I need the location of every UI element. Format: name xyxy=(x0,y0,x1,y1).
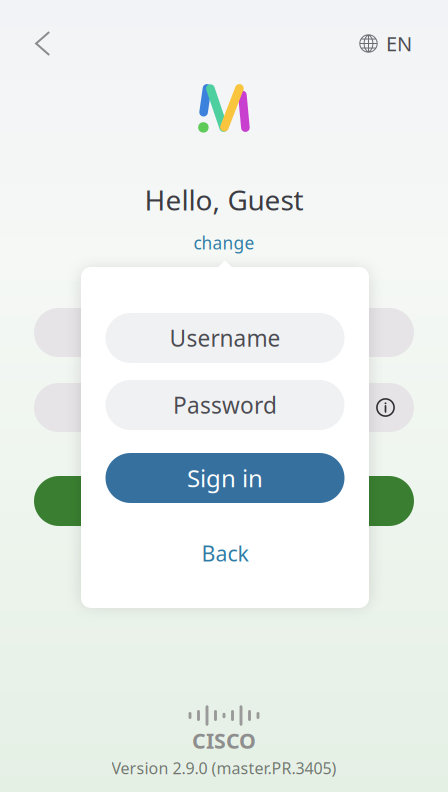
staticText: EN xyxy=(386,30,412,57)
button[interactable]: Language EN xyxy=(359,16,448,71)
staticText: change xyxy=(193,231,254,254)
button[interactable]: change xyxy=(193,231,254,254)
staticText: Version 2.9.0 (master.PR.3405) xyxy=(111,757,336,779)
button[interactable]: Back xyxy=(201,539,248,567)
button[interactable]: Sign in xyxy=(105,453,344,503)
button[interactable]: Back xyxy=(0,17,50,70)
staticText: Username xyxy=(169,323,280,353)
staticText: Hello, Guest xyxy=(144,181,303,218)
staticText: Sign in xyxy=(187,462,263,494)
staticText: Password xyxy=(173,390,277,420)
staticText: Back xyxy=(201,539,248,567)
staticText: CISCO xyxy=(192,726,256,755)
